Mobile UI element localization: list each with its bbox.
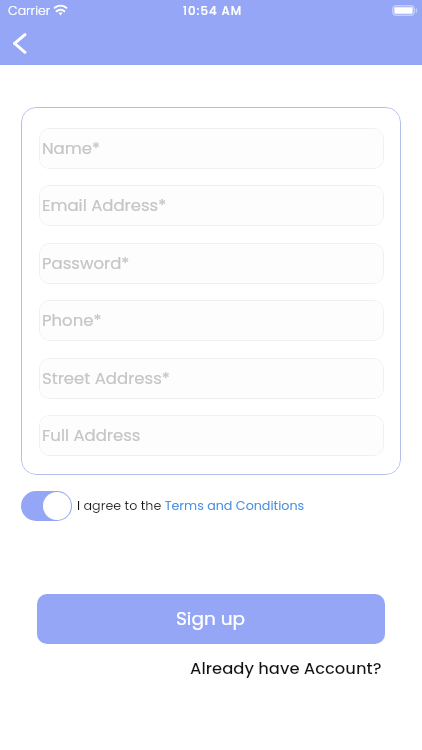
staticText: Email Address* (42, 194, 167, 217)
button[interactable]: Back (1, 25, 37, 61)
button[interactable]: Street Address* (39, 358, 384, 399)
button[interactable]: I agree toggle (21, 491, 72, 521)
staticText: Carrier (8, 2, 51, 19)
staticText: I agree to the Terms and Conditions (77, 497, 305, 515)
staticText: Full Address (42, 424, 141, 447)
button[interactable]: Name* (39, 128, 384, 169)
button[interactable]: Already have Account? (190, 657, 382, 680)
button[interactable]: Password* (39, 243, 384, 284)
staticText: Already have Account? (190, 657, 382, 680)
staticText: Sign up (176, 606, 246, 632)
button[interactable]: Sign up (37, 594, 385, 644)
staticText: 10:54 AM (183, 3, 243, 20)
staticText: Name* (42, 137, 100, 160)
button[interactable]: Full Address (39, 415, 384, 456)
staticText: Password* (42, 252, 130, 275)
staticText: Phone* (42, 309, 102, 332)
button[interactable]: Phone* (39, 300, 384, 341)
staticText: Street Address* (42, 367, 170, 390)
button[interactable]: Email Address* (39, 185, 384, 226)
